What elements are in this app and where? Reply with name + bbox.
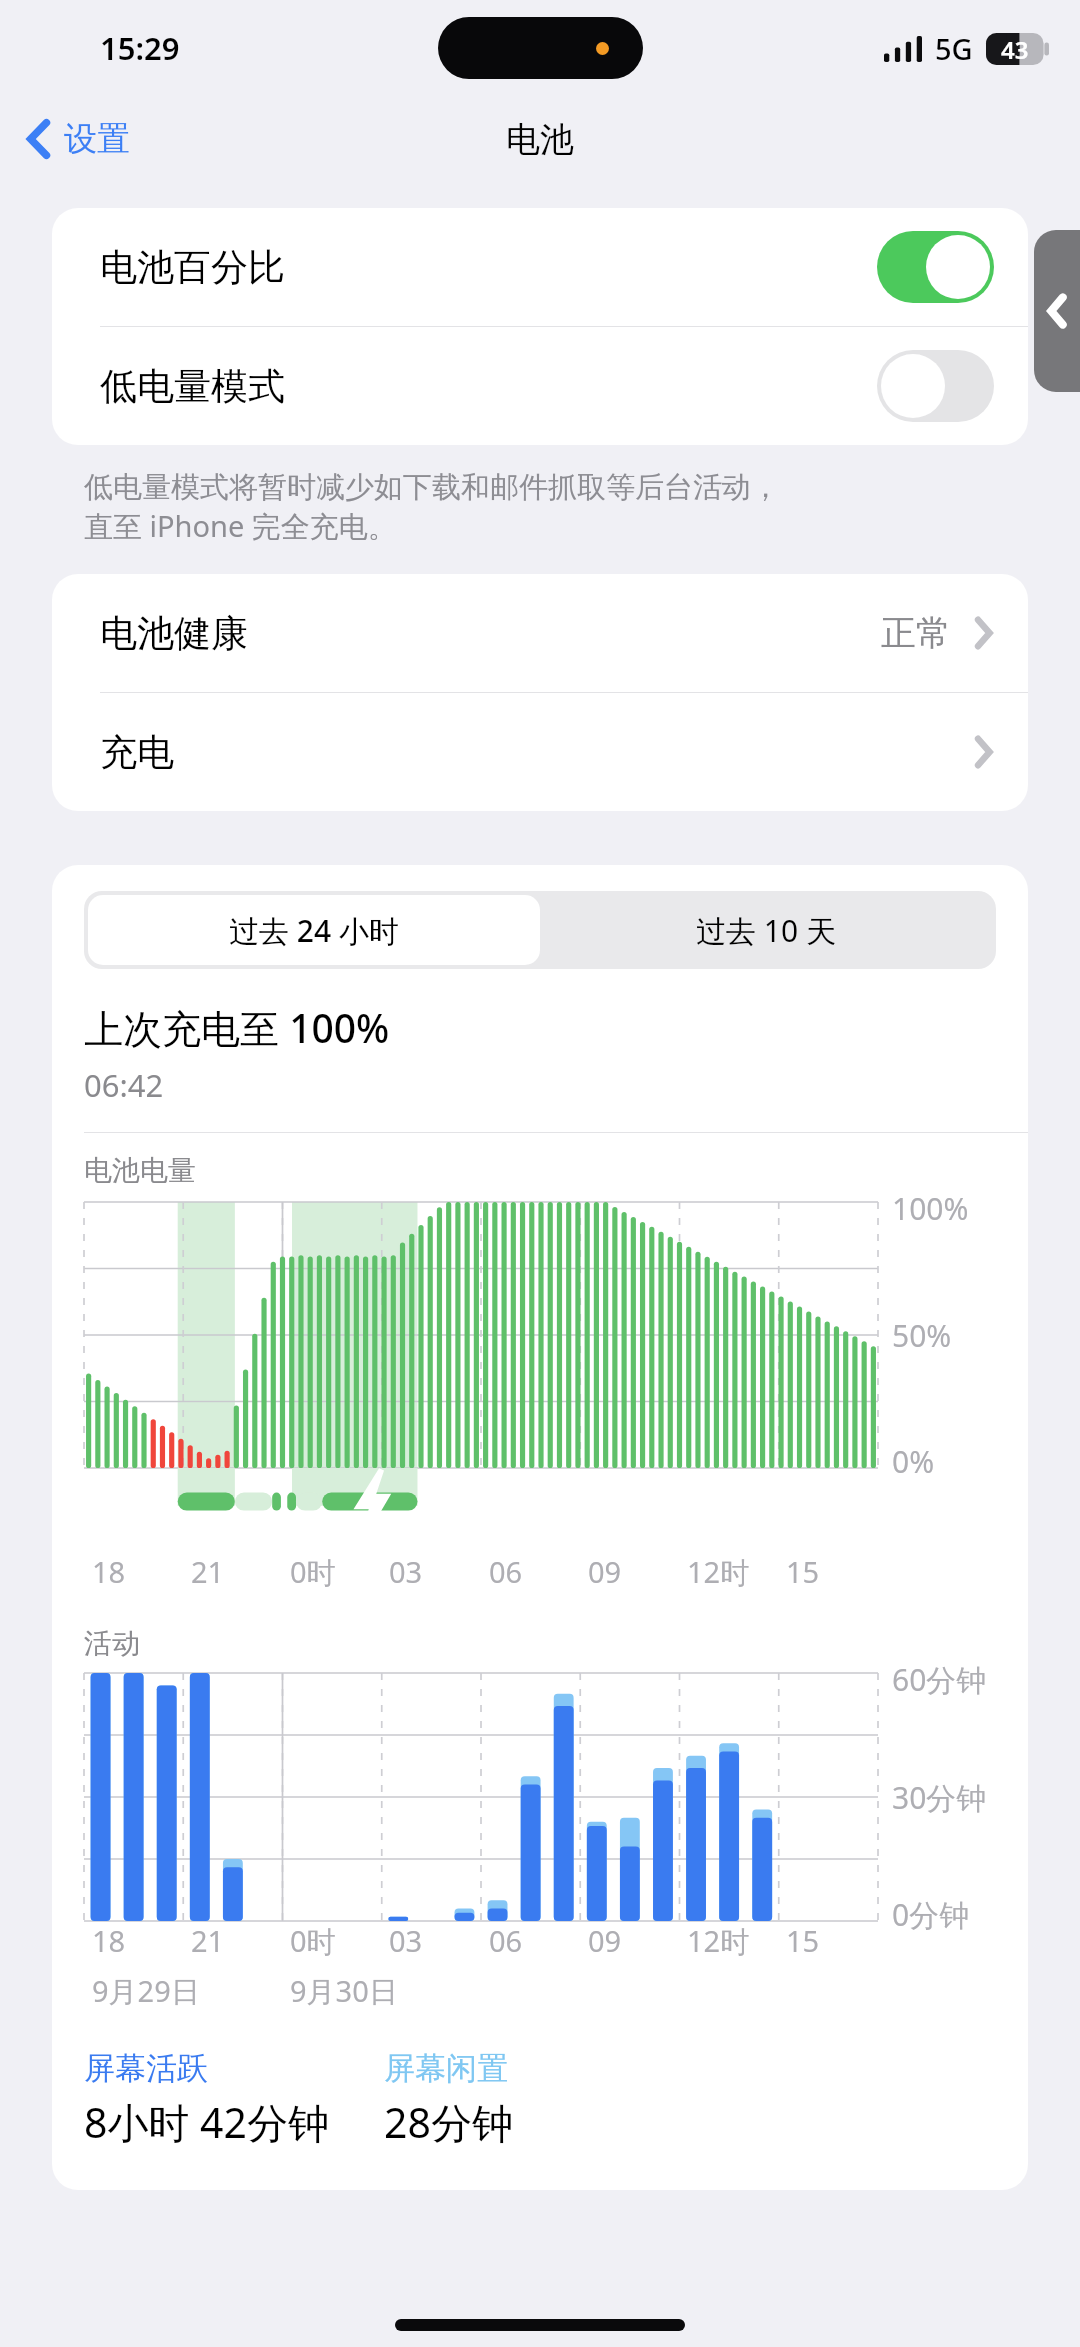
staticText: 30分钟 [892, 1777, 987, 1818]
staticText: 28分钟 [384, 2094, 513, 2150]
staticText: 100% [892, 1188, 969, 1229]
staticText: 电池电量 [84, 1153, 196, 1188]
staticText: 03 [389, 1921, 423, 1960]
staticText: 18 [92, 1552, 126, 1591]
staticText: 上次充电至 100% [84, 1001, 390, 1054]
staticText: 9月30日 [290, 1971, 398, 2011]
staticText: 9月29日 [92, 1971, 200, 2011]
staticText: 09 [588, 1921, 622, 1960]
staticText: 活动 [84, 1626, 140, 1661]
button[interactable]: 充电 [52, 693, 1028, 811]
staticText: 15 [786, 1921, 820, 1960]
staticText: 屏幕闲置 [384, 2049, 508, 2088]
staticText: 电池健康 [100, 610, 881, 657]
staticText: 12时 [687, 1921, 750, 1961]
staticText: 过去 10 天 [696, 910, 836, 951]
staticText: 21 [191, 1552, 225, 1591]
staticText: 充电 [100, 729, 975, 776]
staticText: 50% [892, 1315, 952, 1356]
staticText: 正常 [881, 611, 951, 655]
staticText: 5G [935, 29, 973, 68]
staticText: 过去 24 小时 [229, 910, 399, 951]
button[interactable]: 过去 24 小时 [88, 895, 540, 965]
staticText: 12时 [687, 1552, 750, 1592]
staticText: 低电量模式将暂时减少如下载和邮件抓取等后台活动， [84, 469, 780, 506]
staticText: 设置 [64, 118, 130, 160]
staticText: 03 [389, 1552, 423, 1591]
staticText: 43 [1001, 33, 1029, 65]
button[interactable]: 电池百分比 [52, 208, 1028, 326]
staticText: 18 [92, 1921, 126, 1960]
staticText: 09 [588, 1552, 622, 1591]
staticText: 15 [786, 1552, 820, 1591]
staticText: 屏幕活跃 [84, 2049, 208, 2088]
staticText: 8小时 42分钟 [84, 2094, 330, 2150]
button[interactable]: 低电量模式 [52, 327, 1028, 445]
staticText: 低电量模式 [100, 363, 877, 410]
staticText: 60分钟 [892, 1659, 987, 1700]
button[interactable]: 设置 [20, 112, 138, 166]
staticText: 21 [191, 1921, 225, 1960]
staticText: 直至 iPhone 完全充电。 [84, 506, 397, 546]
button[interactable]: 返回上一个应用 [1034, 230, 1080, 392]
staticText: 电池百分比 [100, 244, 877, 291]
staticText: 06 [489, 1552, 523, 1591]
button[interactable]: 电池健康 [52, 574, 1028, 692]
staticText: 电池 [506, 118, 574, 161]
staticText: 15:29 [100, 27, 180, 69]
staticText: 0% [892, 1441, 935, 1482]
staticText: 06 [489, 1921, 523, 1960]
staticText: 0时 [290, 1921, 336, 1961]
staticText: 0时 [290, 1552, 336, 1592]
staticText: 0分钟 [892, 1894, 970, 1935]
button[interactable]: 过去 10 天 [540, 895, 992, 965]
staticText: 06:42 [84, 1064, 164, 1106]
